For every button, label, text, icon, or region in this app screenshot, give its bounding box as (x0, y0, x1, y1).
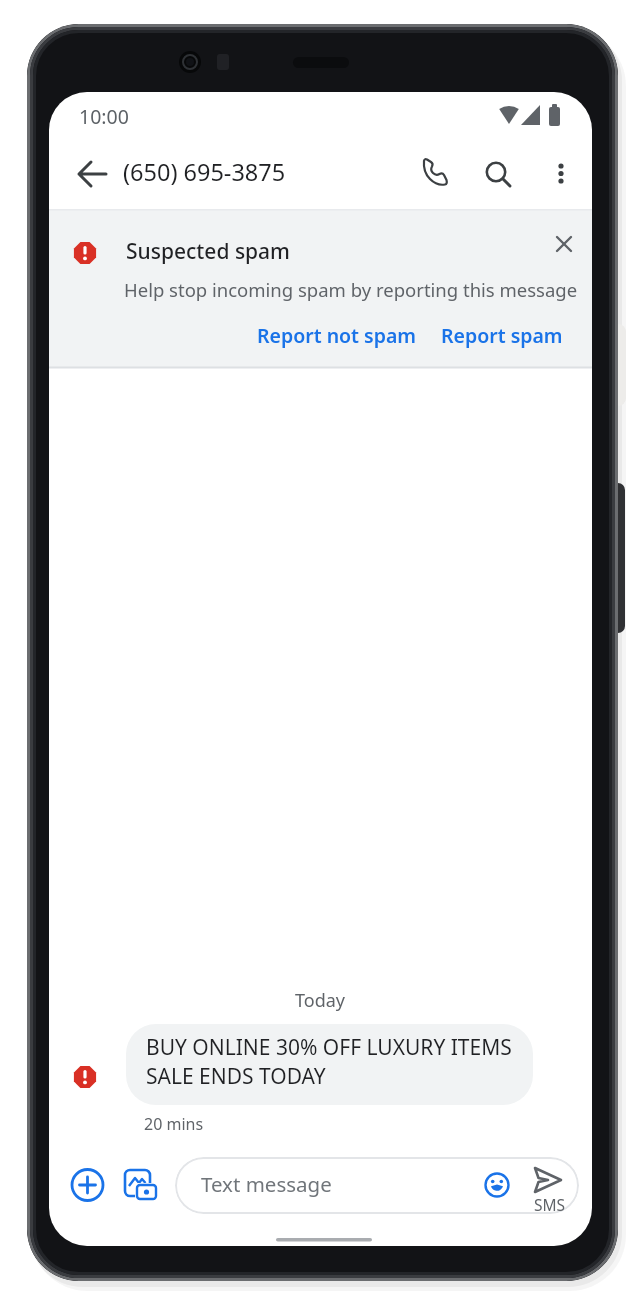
staticText: Report spam (441, 322, 563, 349)
button[interactable]: BUY ONLINE 30% OFF LUXURY ITEMS (126, 1024, 533, 1105)
staticText: (650) 695-3875 (123, 156, 286, 188)
staticText: Suspected spam (126, 237, 291, 266)
button[interactable]: Report spam (419, 317, 584, 353)
button[interactable] (121, 1163, 161, 1208)
staticText: 20 mins (144, 1113, 204, 1135)
button[interactable] (65, 1163, 110, 1208)
button[interactable] (411, 150, 455, 194)
button[interactable] (543, 223, 585, 265)
staticText: Today (295, 988, 345, 1012)
staticText: SMS (534, 1194, 566, 1212)
staticText: Text message (201, 1170, 332, 1198)
button[interactable] (539, 150, 583, 194)
staticText: SALE ENDS TODAY (146, 1062, 326, 1091)
button[interactable] (69, 152, 115, 196)
button[interactable] (527, 1160, 577, 1212)
staticText: Report not spam (257, 322, 417, 349)
button[interactable] (479, 1165, 519, 1205)
button[interactable]: Report not spam (237, 317, 437, 353)
staticText: Help stop incoming spam by reporting thi… (124, 277, 578, 302)
button[interactable] (475, 150, 519, 194)
button[interactable]: Text message (175, 1157, 579, 1214)
staticText: BUY ONLINE 30% OFF LUXURY ITEMS (146, 1033, 512, 1062)
staticText: 10:00 (79, 103, 129, 130)
